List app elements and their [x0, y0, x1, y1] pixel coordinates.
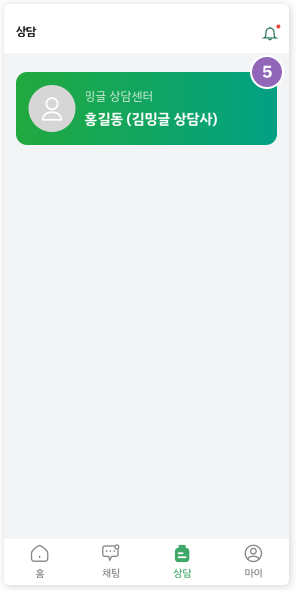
staticText: 5 [262, 59, 272, 85]
button[interactable]: 새 알림 5건 [250, 55, 284, 89]
button[interactable]: 홈 [4, 537, 75, 587]
staticText: 채팅 [102, 565, 120, 581]
staticText: 상담 [173, 565, 191, 581]
button[interactable]: 밍글 상담센터 [16, 72, 277, 145]
button[interactable]: 상담 [146, 537, 218, 587]
button[interactable]: 마이 [218, 537, 289, 587]
staticText: 상담 [16, 23, 36, 40]
staticText: 홈 [35, 565, 44, 581]
button[interactable]: 채팅 [75, 537, 146, 587]
staticText: 밍글 상담센터 [84, 87, 153, 105]
staticText: 마이 [244, 565, 262, 581]
button[interactable]: 알림 [258, 19, 282, 43]
staticText: 홍길동 (김밍글 상담사) [84, 108, 217, 130]
